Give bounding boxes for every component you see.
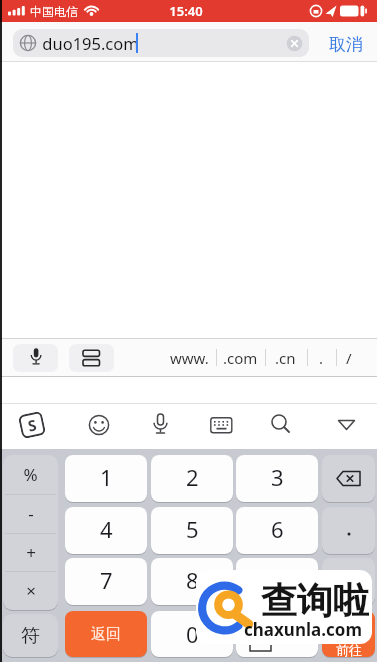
button[interactable] (143, 407, 179, 443)
button[interactable] (3, 455, 58, 610)
button[interactable]: 1 (65, 455, 147, 502)
button[interactable]: 符 (3, 614, 58, 657)
button[interactable]: 返回 (65, 611, 147, 657)
staticText: S (26, 414, 39, 436)
button[interactable]: 7 (65, 558, 147, 605)
staticText: .cn (275, 348, 296, 368)
staticText: 15:40 (169, 2, 203, 20)
button[interactable] (13, 344, 58, 372)
button[interactable]: 9 (236, 558, 318, 605)
button[interactable]: 0 (151, 611, 233, 657)
button[interactable]: 5 (151, 507, 233, 554)
button[interactable]: 取消 (320, 24, 372, 64)
button[interactable]: 3 (236, 455, 318, 502)
button[interactable]: / (336, 338, 362, 377)
staticText: 7 (100, 565, 113, 595)
staticText: 返回 (91, 625, 121, 644)
staticText: .com (223, 348, 258, 368)
staticText: chaxunla.com (244, 618, 362, 638)
button[interactable]: 4 (65, 507, 147, 554)
button[interactable] (236, 611, 318, 657)
staticText: www. (170, 348, 209, 368)
staticText: 4 (100, 514, 113, 544)
staticText: - (28, 502, 34, 525)
button[interactable] (330, 407, 366, 443)
staticText: 2 (186, 462, 199, 492)
staticText: 5 (186, 514, 199, 544)
button[interactable] (263, 407, 299, 443)
button[interactable]: 8 (151, 558, 233, 605)
staticText: % (23, 463, 38, 486)
button[interactable]: 2 (151, 455, 233, 502)
button[interactable] (322, 507, 375, 554)
staticText: 9 (271, 565, 284, 595)
staticText: 8 (186, 565, 199, 595)
button[interactable]: www. (165, 338, 213, 377)
button[interactable]: S (18, 411, 46, 439)
staticText: 查询啦 (261, 578, 369, 620)
staticText: 6 (271, 514, 284, 544)
staticText: 3 (271, 462, 284, 492)
staticText: 符 (21, 624, 40, 648)
staticText: × (26, 579, 36, 602)
button[interactable]: .cn (265, 338, 306, 377)
staticText: . (319, 348, 324, 368)
staticText: + (26, 541, 36, 564)
staticText: 0 (186, 619, 199, 649)
button[interactable]: 6 (236, 507, 318, 554)
button[interactable] (81, 407, 117, 443)
button[interactable]: .com (216, 338, 264, 377)
button[interactable] (69, 344, 114, 372)
button[interactable] (0, 338, 377, 377)
button[interactable] (322, 611, 375, 657)
staticText: 前往 (336, 642, 362, 658)
staticText: / (346, 348, 352, 368)
staticText: 取消 (329, 34, 363, 55)
button[interactable] (13, 29, 309, 57)
button[interactable] (322, 455, 375, 502)
staticText: duo195.com (42, 32, 139, 54)
staticText: 中国电信 (30, 4, 78, 19)
button[interactable] (203, 407, 239, 443)
staticText: 1 (100, 462, 113, 492)
button[interactable]: . (307, 338, 335, 377)
button[interactable] (322, 558, 375, 605)
